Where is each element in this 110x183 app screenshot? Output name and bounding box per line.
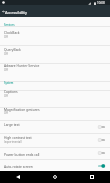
button[interactable]: Auto-rotate screen: [0, 159, 110, 171]
button[interactable]: QueryBack: [0, 45, 110, 63]
staticText: High contrast text: [4, 135, 92, 139]
staticText: Services: [4, 23, 15, 27]
other: Toggle: [98, 150, 105, 156]
staticText: System: [4, 81, 14, 85]
staticText: Large text: [4, 122, 92, 126]
button[interactable]: Magnification gestures: [0, 107, 110, 120]
staticText: Adware Hunter Service: [4, 63, 92, 67]
staticText: Magnification gestures: [4, 107, 92, 111]
staticText: Power button ends call: [4, 152, 92, 156]
staticText: Off: [4, 68, 8, 72]
button[interactable]: Home: [36, 171, 73, 183]
staticText: Off: [4, 94, 8, 98]
button[interactable]: Recent apps: [73, 171, 110, 183]
button[interactable]: Navigate up: [1, 5, 6, 17]
staticText: Off: [4, 35, 8, 39]
staticText: Off: [4, 52, 8, 56]
staticText: Auto-rotate screen: [4, 164, 92, 168]
staticText: ClockBack: [4, 30, 92, 34]
other: Toggle: [98, 124, 105, 130]
button[interactable]: Power button ends call: [0, 147, 110, 159]
other: Toggle: [98, 137, 105, 143]
button[interactable]: Large text: [0, 120, 110, 133]
staticText: Off: [4, 111, 8, 115]
button[interactable]: Back: [0, 171, 36, 183]
staticText: Captions: [4, 90, 92, 93]
staticText: 10:08: [97, 1, 105, 5]
button[interactable]: High contrast text: [0, 133, 110, 147]
button[interactable]: ClockBack: [0, 26, 110, 45]
button[interactable]: Adware Hunter Service: [0, 63, 110, 81]
staticText: QueryBack: [4, 47, 92, 51]
other: Toggle: [98, 163, 105, 169]
staticText: Accessibility: [5, 10, 27, 15]
button[interactable]: Captions: [0, 90, 110, 107]
staticText: (experimental): [4, 140, 22, 144]
